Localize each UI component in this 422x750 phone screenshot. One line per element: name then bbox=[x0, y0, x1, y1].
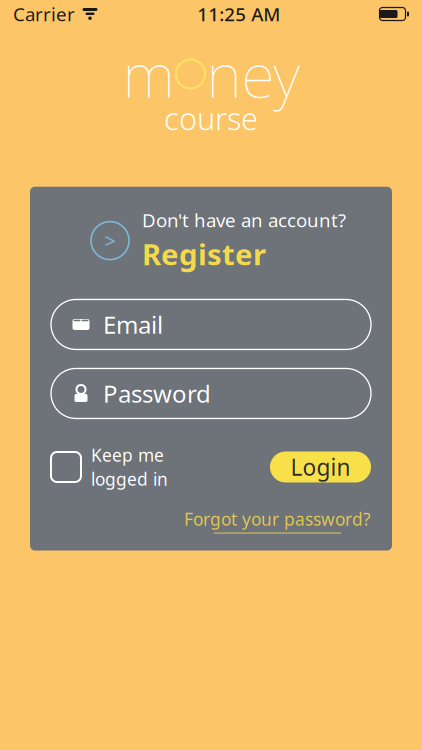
staticText: 11:25 AM bbox=[197, 2, 280, 26]
button[interactable]: Forgot your password? bbox=[184, 507, 371, 533]
staticText: m bbox=[122, 33, 174, 115]
staticText: > bbox=[104, 227, 115, 254]
staticText: Password bbox=[103, 377, 211, 409]
staticText: Forgot your password? bbox=[184, 507, 371, 530]
button[interactable]: Keep me bbox=[51, 443, 168, 490]
staticText: ney bbox=[206, 33, 299, 115]
button[interactable]: Password bbox=[51, 368, 371, 418]
staticText: Register bbox=[142, 234, 266, 273]
button[interactable]: Login bbox=[270, 451, 371, 482]
staticText: Login bbox=[290, 452, 350, 482]
button[interactable]: Email bbox=[51, 299, 371, 349]
staticText: course bbox=[164, 98, 258, 139]
staticText: Don't have an account? bbox=[142, 208, 346, 232]
staticText: logged in bbox=[91, 467, 168, 490]
staticText: Carrier bbox=[13, 2, 75, 26]
staticText: Email bbox=[103, 308, 163, 340]
button[interactable]: > bbox=[51, 208, 371, 273]
staticText: Keep me bbox=[91, 443, 164, 466]
